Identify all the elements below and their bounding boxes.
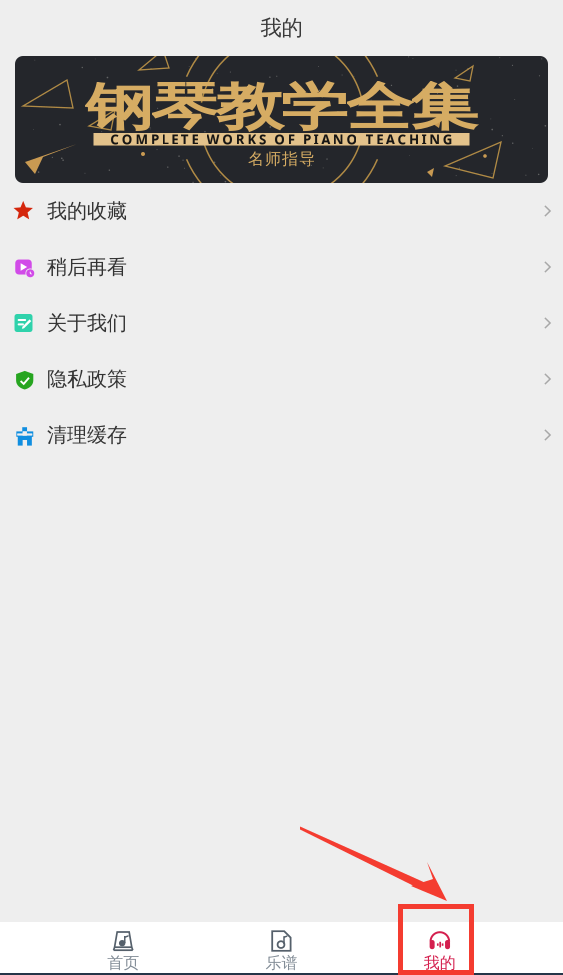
staticText: P xyxy=(303,130,311,148)
button[interactable]: 我的 xyxy=(361,922,519,973)
staticText: 我的 xyxy=(260,15,302,41)
staticText: 关于我们 xyxy=(47,311,127,335)
staticText: T xyxy=(181,130,189,148)
staticText: 导 xyxy=(299,149,315,169)
staticText: A xyxy=(386,130,395,148)
staticText: 教 xyxy=(214,65,283,150)
staticText: K xyxy=(247,130,256,148)
staticText: O xyxy=(346,130,357,148)
staticText xyxy=(201,130,204,148)
staticText: 全 xyxy=(344,65,413,150)
staticText: W xyxy=(207,130,220,148)
staticText: F xyxy=(288,130,295,148)
staticText: E xyxy=(191,130,198,148)
staticText: C xyxy=(110,130,119,148)
staticText: P xyxy=(151,130,159,148)
staticText xyxy=(269,130,272,148)
button[interactable]: 稍后再看 xyxy=(0,239,563,295)
staticText: 师 xyxy=(265,149,281,169)
staticText: I xyxy=(422,130,427,148)
staticText: 稍后再看 xyxy=(47,255,127,279)
staticText: 乐谱 xyxy=(265,953,297,973)
staticText: M xyxy=(135,130,148,148)
staticText: H xyxy=(409,130,419,148)
button[interactable]: 我的收藏 xyxy=(0,183,563,239)
staticText: E xyxy=(171,130,178,148)
staticText: E xyxy=(376,130,383,148)
staticText: 钢 xyxy=(84,65,153,150)
staticText: G xyxy=(443,130,453,148)
staticText: 首页 xyxy=(107,953,139,973)
staticText: L xyxy=(162,130,169,148)
staticText: O xyxy=(274,130,285,148)
staticText: A xyxy=(321,130,330,148)
staticText: C xyxy=(397,130,406,148)
staticText: R xyxy=(236,130,245,148)
staticText: N xyxy=(429,130,440,148)
staticText: 学 xyxy=(279,65,348,150)
staticText: 集 xyxy=(409,65,478,150)
staticText: O xyxy=(222,130,233,148)
button[interactable]: 清理缓存 xyxy=(0,407,563,463)
staticText: O xyxy=(122,130,133,148)
button[interactable]: 隐私政策 xyxy=(0,351,563,407)
staticText xyxy=(297,130,300,148)
button[interactable]: 乐谱 xyxy=(202,922,361,973)
staticText: 我的 xyxy=(424,953,456,973)
staticText: 琴 xyxy=(149,65,218,150)
staticText: 隐私政策 xyxy=(47,367,127,391)
staticText: N xyxy=(333,130,344,148)
button[interactable]: 首页 xyxy=(44,922,202,973)
staticText: I xyxy=(314,130,319,148)
staticText: S xyxy=(259,130,266,148)
staticText: 指 xyxy=(282,149,298,169)
staticText xyxy=(360,130,363,148)
staticText: T xyxy=(366,130,374,148)
staticText: 名 xyxy=(248,149,264,169)
staticText: 清理缓存 xyxy=(47,423,127,447)
button[interactable]: 关于我们 xyxy=(0,295,563,351)
staticText: 我的收藏 xyxy=(47,199,127,223)
